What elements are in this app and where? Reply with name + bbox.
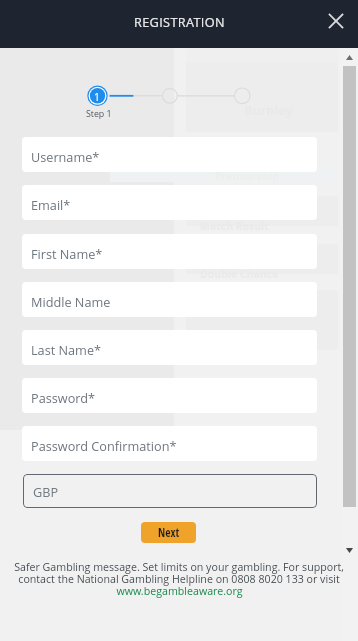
staticText: GBP: [33, 483, 59, 500]
staticText: REGISTRATION: [134, 13, 225, 30]
button[interactable]: Scroll down: [346, 548, 353, 553]
staticText: 1: [94, 90, 101, 104]
button[interactable]: Scroll up: [346, 55, 353, 60]
staticText: Password*: [31, 389, 96, 406]
staticText: Match Result: [200, 219, 269, 233]
staticText: Premiership: [215, 169, 279, 183]
button[interactable]: GBP: [23, 474, 317, 508]
staticText: Password Confirmation*: [31, 437, 177, 454]
button[interactable]: Last Name*: [22, 330, 317, 365]
button[interactable]: Password*: [22, 378, 317, 413]
staticText: First Name*: [31, 245, 103, 262]
staticText: Double Chance: [200, 267, 279, 281]
button[interactable]: www.begambleaware.org: [116, 584, 243, 599]
staticText: Username*: [31, 148, 100, 165]
button[interactable]: First Name*: [22, 234, 317, 269]
staticText: contact the National Gambling Helpline o…: [18, 572, 340, 587]
staticText: Safer Gambling message. Set limits on yo…: [14, 560, 344, 575]
staticText: To: [306, 200, 318, 214]
button[interactable]: Password Confirmation*: [22, 426, 317, 461]
button[interactable]: Close: [322, 7, 350, 35]
button[interactable]: Next: [141, 522, 196, 543]
staticText: Middle Name: [31, 293, 111, 310]
staticText: Last Name*: [31, 341, 102, 358]
staticText: Step 1: [86, 108, 112, 120]
staticText: Email*: [31, 196, 71, 213]
staticText: Next: [158, 525, 180, 541]
button[interactable]: Username*: [22, 137, 317, 172]
button[interactable]: Email*: [22, 185, 317, 220]
button[interactable]: Middle Name: [22, 282, 317, 317]
